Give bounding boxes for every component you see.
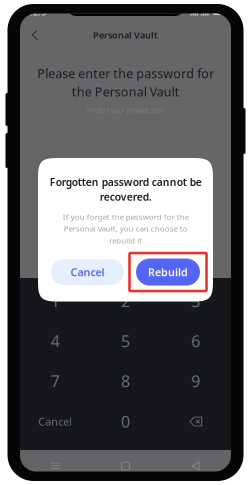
button[interactable]: 1 — [20, 281, 90, 321]
staticText: 7 — [51, 370, 60, 392]
staticText: 2 — [121, 290, 130, 312]
staticText: Rebuild — [148, 265, 188, 279]
staticText: 5 — [121, 330, 130, 352]
button[interactable]: 9 — [161, 361, 231, 401]
staticText: 6 — [191, 330, 200, 352]
staticText: 9 — [191, 370, 200, 392]
button[interactable]: 7 — [20, 361, 90, 401]
button[interactable]: Home — [90, 462, 161, 470]
staticText: Personal Vault — [93, 29, 158, 41]
staticText: Forgotten password cannot be recovered. — [49, 175, 201, 204]
button[interactable]: Rebuild — [136, 259, 200, 286]
button[interactable]: 5 — [90, 321, 161, 361]
staticText: 12:5 — [28, 6, 46, 18]
button[interactable]: 8 — [90, 361, 161, 401]
staticText: 8 — [121, 370, 130, 392]
button[interactable]: Back — [20, 21, 50, 49]
button[interactable]: 4 — [20, 321, 90, 361]
button[interactable]: 6 — [161, 321, 231, 361]
button[interactable]: Delete — [161, 401, 231, 442]
staticText: Cancel — [70, 265, 104, 279]
button[interactable]: Recent apps — [20, 462, 90, 470]
staticText: 1 — [51, 290, 60, 312]
staticText: Cancel — [38, 414, 72, 429]
button[interactable]: 2 — [90, 281, 161, 321]
button[interactable]: Back — [161, 461, 231, 470]
button[interactable]: Cancel — [51, 259, 124, 285]
staticText: Protect your private files — [87, 106, 164, 115]
button[interactable]: Cancel — [20, 401, 90, 442]
staticText: 4 — [51, 330, 60, 352]
staticText: 3 — [191, 290, 200, 312]
staticText: 0 — [121, 411, 130, 432]
staticText: Please enter the password for the Person… — [37, 65, 214, 100]
button[interactable]: 0 — [90, 401, 161, 441]
button[interactable]: 3 — [161, 281, 231, 321]
staticText: If you forget the password for the Perso… — [62, 212, 188, 246]
